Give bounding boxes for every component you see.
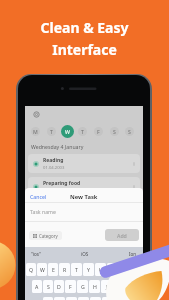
staticText: A [35, 283, 39, 290]
staticText: Category [39, 233, 58, 239]
button[interactable]: E [48, 263, 58, 276]
staticText: F [97, 128, 100, 135]
button[interactable]: X [54, 297, 65, 300]
button[interactable]: M [31, 127, 40, 136]
staticText: S [47, 283, 50, 290]
staticText: T [81, 128, 84, 135]
button[interactable]: L [125, 280, 136, 293]
staticText: Q [29, 266, 34, 273]
staticText: H [93, 283, 97, 290]
button[interactable]: U [95, 263, 106, 276]
other: More options [132, 162, 136, 166]
staticText: P [135, 266, 139, 273]
button[interactable]: C [66, 297, 77, 300]
button[interactable]: Category [29, 231, 62, 240]
button[interactable]: I [107, 263, 118, 276]
button[interactable]: P [131, 263, 142, 276]
button[interactable]: A [32, 280, 42, 293]
staticText: New Task [70, 193, 98, 201]
staticText: iOS [81, 251, 89, 257]
button[interactable]: T [71, 263, 82, 276]
button[interactable]: T [78, 127, 87, 136]
staticText: Ion [129, 251, 137, 257]
button[interactable]: W [37, 263, 47, 276]
button[interactable]: F [65, 280, 76, 293]
button[interactable]: Y [83, 263, 94, 276]
button[interactable]: O [119, 263, 130, 276]
button[interactable]: B [90, 297, 101, 300]
staticText: L [129, 283, 132, 290]
button[interactable]: Q [26, 263, 36, 276]
staticText: E [52, 266, 55, 273]
button[interactable]: S [125, 127, 134, 136]
staticText: G [81, 283, 85, 290]
other: More options [132, 185, 136, 189]
staticText: J [106, 283, 108, 290]
button[interactable]: Z [43, 297, 53, 300]
button[interactable]: S [43, 280, 53, 293]
button[interactable]: J [101, 280, 112, 293]
button[interactable]: T [47, 127, 56, 136]
button[interactable]: Preparing food [28, 177, 140, 196]
staticText: Task name [30, 208, 56, 215]
staticText: T [50, 128, 53, 135]
button[interactable]: Reading [28, 154, 140, 173]
button[interactable]: R [59, 263, 70, 276]
staticText: Preparing food [43, 180, 81, 187]
staticText: D [57, 283, 61, 290]
staticText: Add [117, 232, 127, 239]
staticText: U [99, 266, 103, 273]
staticText: Interface [52, 40, 117, 59]
button[interactable]: Cancel [30, 193, 47, 200]
staticText: W [40, 266, 45, 273]
staticText: Clean & Easy [40, 18, 129, 37]
button[interactable]: S [110, 127, 119, 136]
button[interactable]: Add [105, 229, 139, 241]
staticText: Y [87, 266, 90, 273]
button[interactable]: V [78, 297, 89, 300]
button[interactable]: W [61, 125, 74, 138]
staticText: Wednesday 4 January [31, 143, 84, 150]
staticText: T [75, 266, 78, 273]
staticText: O [122, 266, 127, 273]
staticText: W [65, 128, 70, 135]
staticText: "ios" [31, 251, 41, 257]
staticText: S [128, 128, 131, 135]
button[interactable]: Settings [33, 111, 40, 118]
button[interactable]: N [102, 297, 113, 300]
staticText: F [69, 283, 72, 290]
staticText: 01.04.2003 [43, 165, 65, 171]
button[interactable]: G [77, 280, 88, 293]
staticText: M [33, 128, 38, 135]
staticText: Reading [43, 157, 64, 164]
button[interactable]: H [89, 280, 100, 293]
staticText: S [113, 128, 116, 135]
staticText: R [63, 266, 67, 273]
button[interactable]: F [94, 127, 103, 136]
button[interactable]: D [54, 280, 64, 293]
